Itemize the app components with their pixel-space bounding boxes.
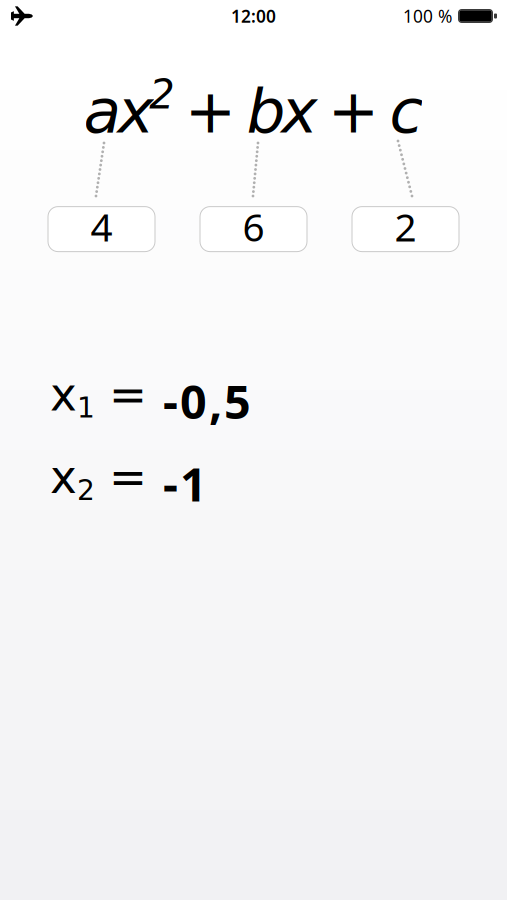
button[interactable]: 6 — [199, 206, 307, 252]
staticText: 100 % — [403, 4, 452, 27]
staticText: 4 — [90, 201, 112, 252]
staticText: 6 — [242, 201, 264, 252]
button[interactable]: 4 — [47, 206, 155, 252]
staticText: x1 = — [50, 369, 161, 424]
staticText: x2 = — [50, 452, 161, 506]
staticText: -0,5 — [163, 369, 251, 433]
staticText: 12:00 — [231, 4, 276, 27]
staticText: 2 — [394, 201, 416, 252]
staticText: ax2 + bx + c — [84, 72, 423, 146]
button[interactable]: 2 — [351, 206, 459, 252]
staticText: -1 — [163, 452, 207, 515]
